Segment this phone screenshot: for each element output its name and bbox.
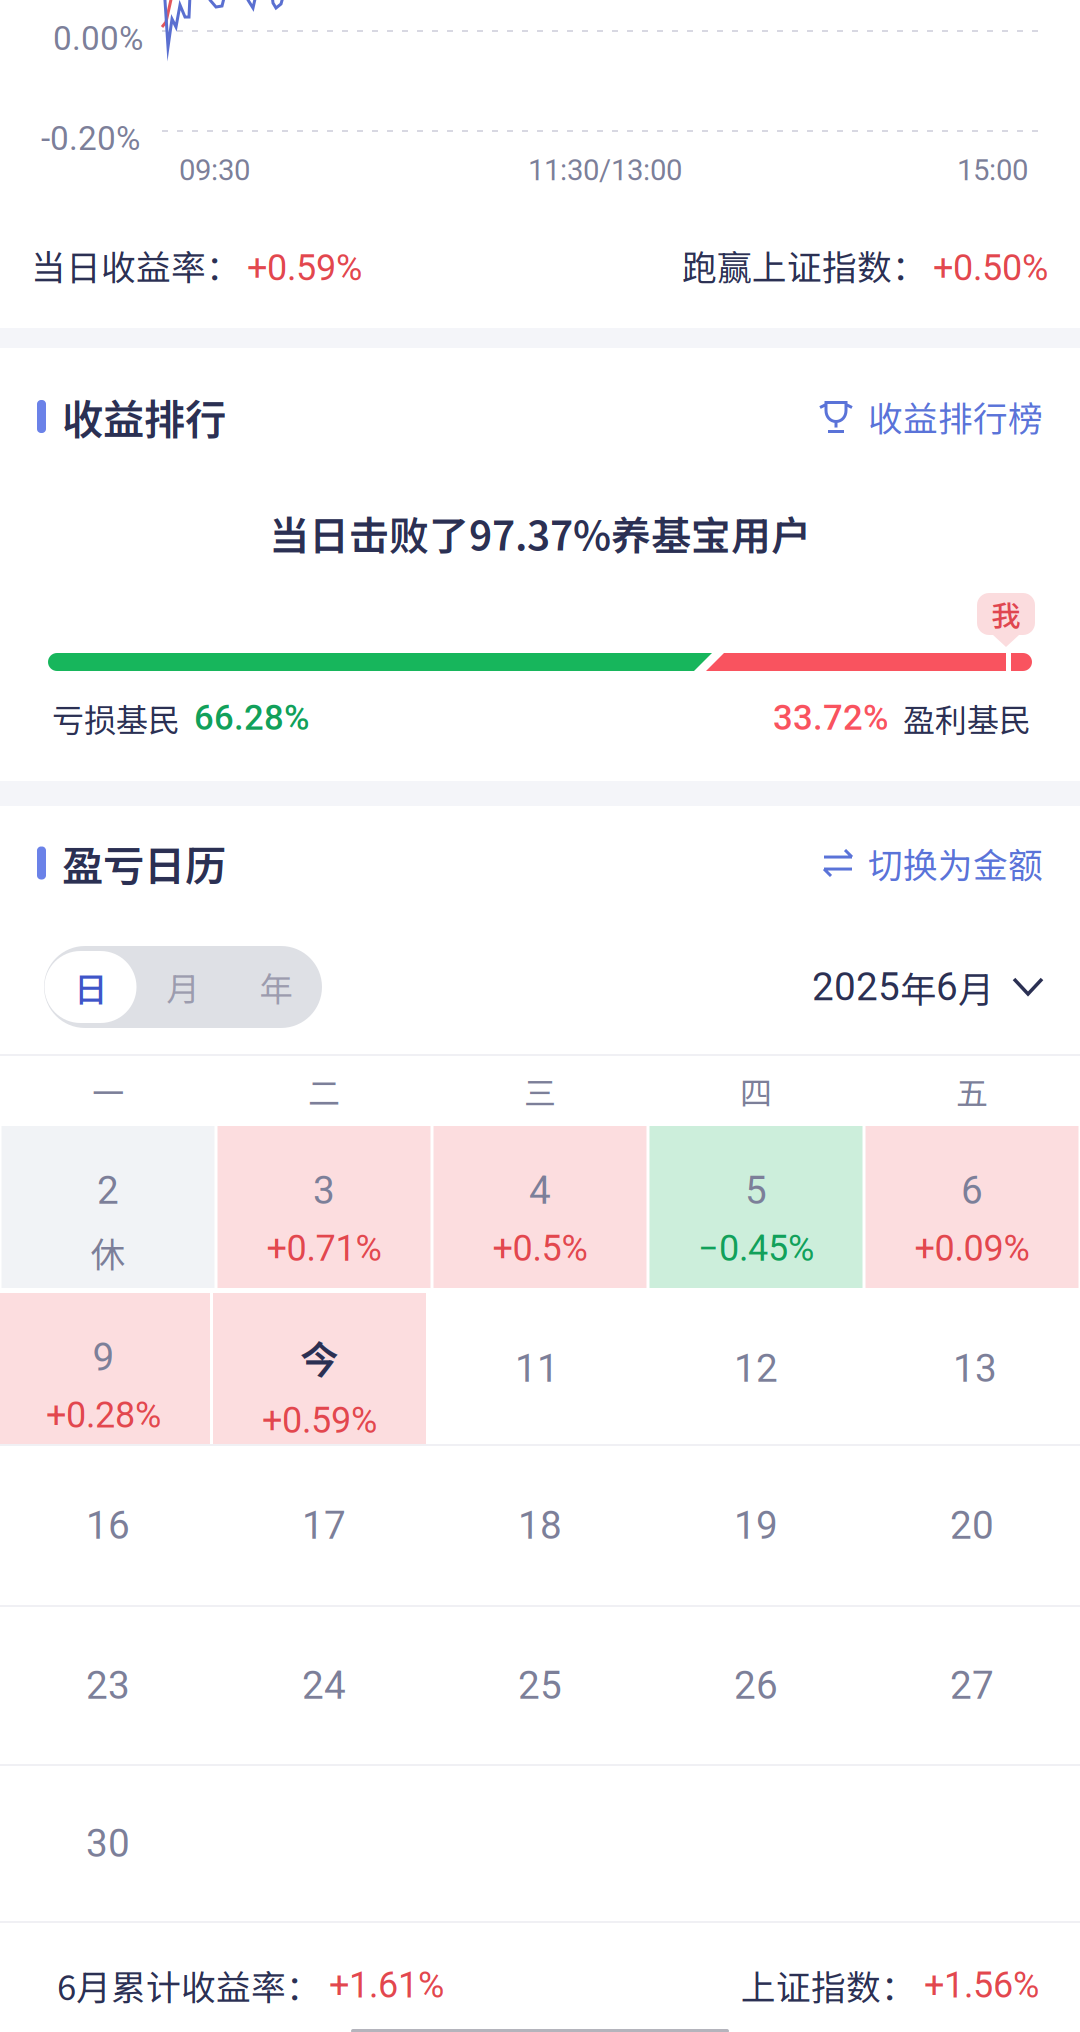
staticText: 5 [745,1168,767,1213]
staticText: 19 [734,1503,778,1548]
button[interactable]: 2 [1,1126,214,1288]
button[interactable]: 18 [432,1446,648,1605]
staticText: 66.28% [194,698,310,738]
button[interactable]: 3 [217,1126,430,1288]
button[interactable]: 9 [0,1293,210,1444]
staticText: 四 [740,1068,772,1114]
staticText: 12 [734,1346,778,1391]
button[interactable]: 切换为金额 [822,832,1043,894]
button[interactable]: 26 [648,1607,864,1764]
staticText: 收益排行 [62,387,226,446]
staticText: 日 [74,963,107,1011]
staticText: +1.61% [329,1964,444,2006]
button[interactable]: 16 [0,1446,216,1605]
staticText: 6 [936,964,958,1010]
staticText: 15:00 [957,153,1028,187]
staticText: +0.59% [247,247,362,289]
button[interactable]: 30 [0,1766,216,1921]
button[interactable]: 23 [0,1607,216,1764]
staticText: -0.20% [41,119,140,158]
staticText: 11:30/13:00 [528,153,682,187]
staticText: +0.59% [262,1399,377,1442]
button[interactable]: 24 [216,1607,432,1764]
staticText: 3 [313,1168,335,1213]
staticText: 09:30 [179,153,250,187]
staticText: 今 [300,1329,339,1385]
button[interactable]: 25 [432,1607,648,1764]
staticText: 三 [524,1068,556,1114]
staticText: 亏损基民 [52,695,180,741]
staticText: 13 [953,1346,997,1391]
staticText: 25 [518,1663,562,1708]
staticText: 18 [518,1503,562,1548]
staticText: 33.72% [773,698,889,738]
staticText: −0.45% [698,1227,814,1269]
staticText: 9 [92,1335,114,1380]
staticText: 6 [961,1168,983,1213]
staticText: 切换为金额 [868,838,1043,888]
staticText: 27 [950,1663,994,1708]
staticText: 4 [529,1168,551,1213]
staticText: 当日击败了97.37%养基宝用户 [269,504,811,562]
staticText: 休 [90,1227,125,1277]
staticText: 26 [734,1663,778,1708]
staticText: 当日收益率： [31,240,241,290]
staticText: 2 [97,1168,119,1213]
staticText: 2025 [812,964,900,1010]
staticText: 跑赢上证指数： [682,240,927,290]
staticText: 年 [900,961,936,1013]
button[interactable]: 27 [864,1607,1080,1764]
staticText: 二 [308,1068,340,1114]
staticText: +0.5% [492,1227,587,1269]
staticText: 月 [958,961,994,1013]
button[interactable]: 日 [44,951,136,1023]
staticText: +1.56% [924,1964,1039,2006]
staticText: 20 [950,1503,994,1548]
button[interactable]: 收益排行榜 [818,385,1043,448]
button[interactable]: 13 [867,1293,1080,1444]
staticText: 盈利基民 [903,695,1031,741]
staticText: 6月累计收益率： [57,1960,321,2010]
button[interactable]: 11 [429,1293,645,1444]
staticText: 上证指数： [741,1960,916,2010]
button[interactable]: 2025 [812,953,1044,1021]
button[interactable]: 月 [136,946,229,1028]
button[interactable]: 年 [229,946,322,1028]
button[interactable]: 4 [433,1126,646,1288]
staticText: +0.28% [46,1394,161,1436]
staticText: 23 [86,1663,130,1708]
staticText: 17 [302,1503,346,1548]
button[interactable]: 20 [864,1446,1080,1605]
button[interactable]: 12 [648,1293,864,1444]
staticText: 我 [991,593,1020,635]
staticText: 月 [166,963,199,1011]
staticText: 五 [956,1068,988,1114]
staticText: 0.00% [53,19,143,58]
staticText: 11 [515,1346,559,1391]
button[interactable]: 19 [648,1446,864,1605]
staticText: 年 [259,963,292,1011]
staticText: +0.71% [266,1227,381,1269]
button[interactable]: 17 [216,1446,432,1605]
button[interactable]: 6 [865,1126,1078,1288]
staticText: 收益排行榜 [868,391,1043,442]
staticText: 30 [86,1821,130,1866]
staticText: 16 [86,1503,130,1548]
staticText: 一 [92,1068,124,1114]
staticText: 盈亏日历 [62,833,226,893]
button[interactable]: 5 [649,1126,862,1288]
staticText: +0.50% [933,247,1048,289]
staticText: 24 [302,1663,346,1708]
staticText: +0.09% [914,1227,1029,1269]
button[interactable]: 今 [213,1293,426,1444]
